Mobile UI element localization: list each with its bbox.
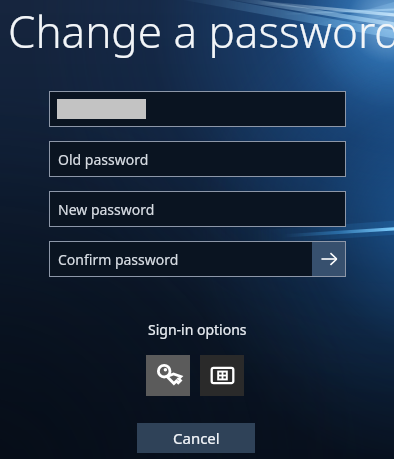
staticText: Confirm password xyxy=(58,250,179,269)
button[interactable]: Password sign-in xyxy=(146,355,190,396)
button[interactable]: Submit xyxy=(312,242,346,276)
staticText: New password xyxy=(58,200,155,219)
staticText: Cancel xyxy=(173,428,220,448)
button[interactable] xyxy=(49,91,346,127)
button[interactable]: Old password xyxy=(49,141,346,177)
button[interactable]: New password xyxy=(49,191,346,227)
button[interactable]: Confirm password xyxy=(49,250,312,269)
staticText: Old password xyxy=(58,150,149,169)
button[interactable]: Cancel xyxy=(137,423,255,453)
button[interactable]: Security key sign-in xyxy=(200,355,244,396)
staticText: Sign-in options xyxy=(148,320,247,339)
staticText: Change a password xyxy=(8,1,394,61)
